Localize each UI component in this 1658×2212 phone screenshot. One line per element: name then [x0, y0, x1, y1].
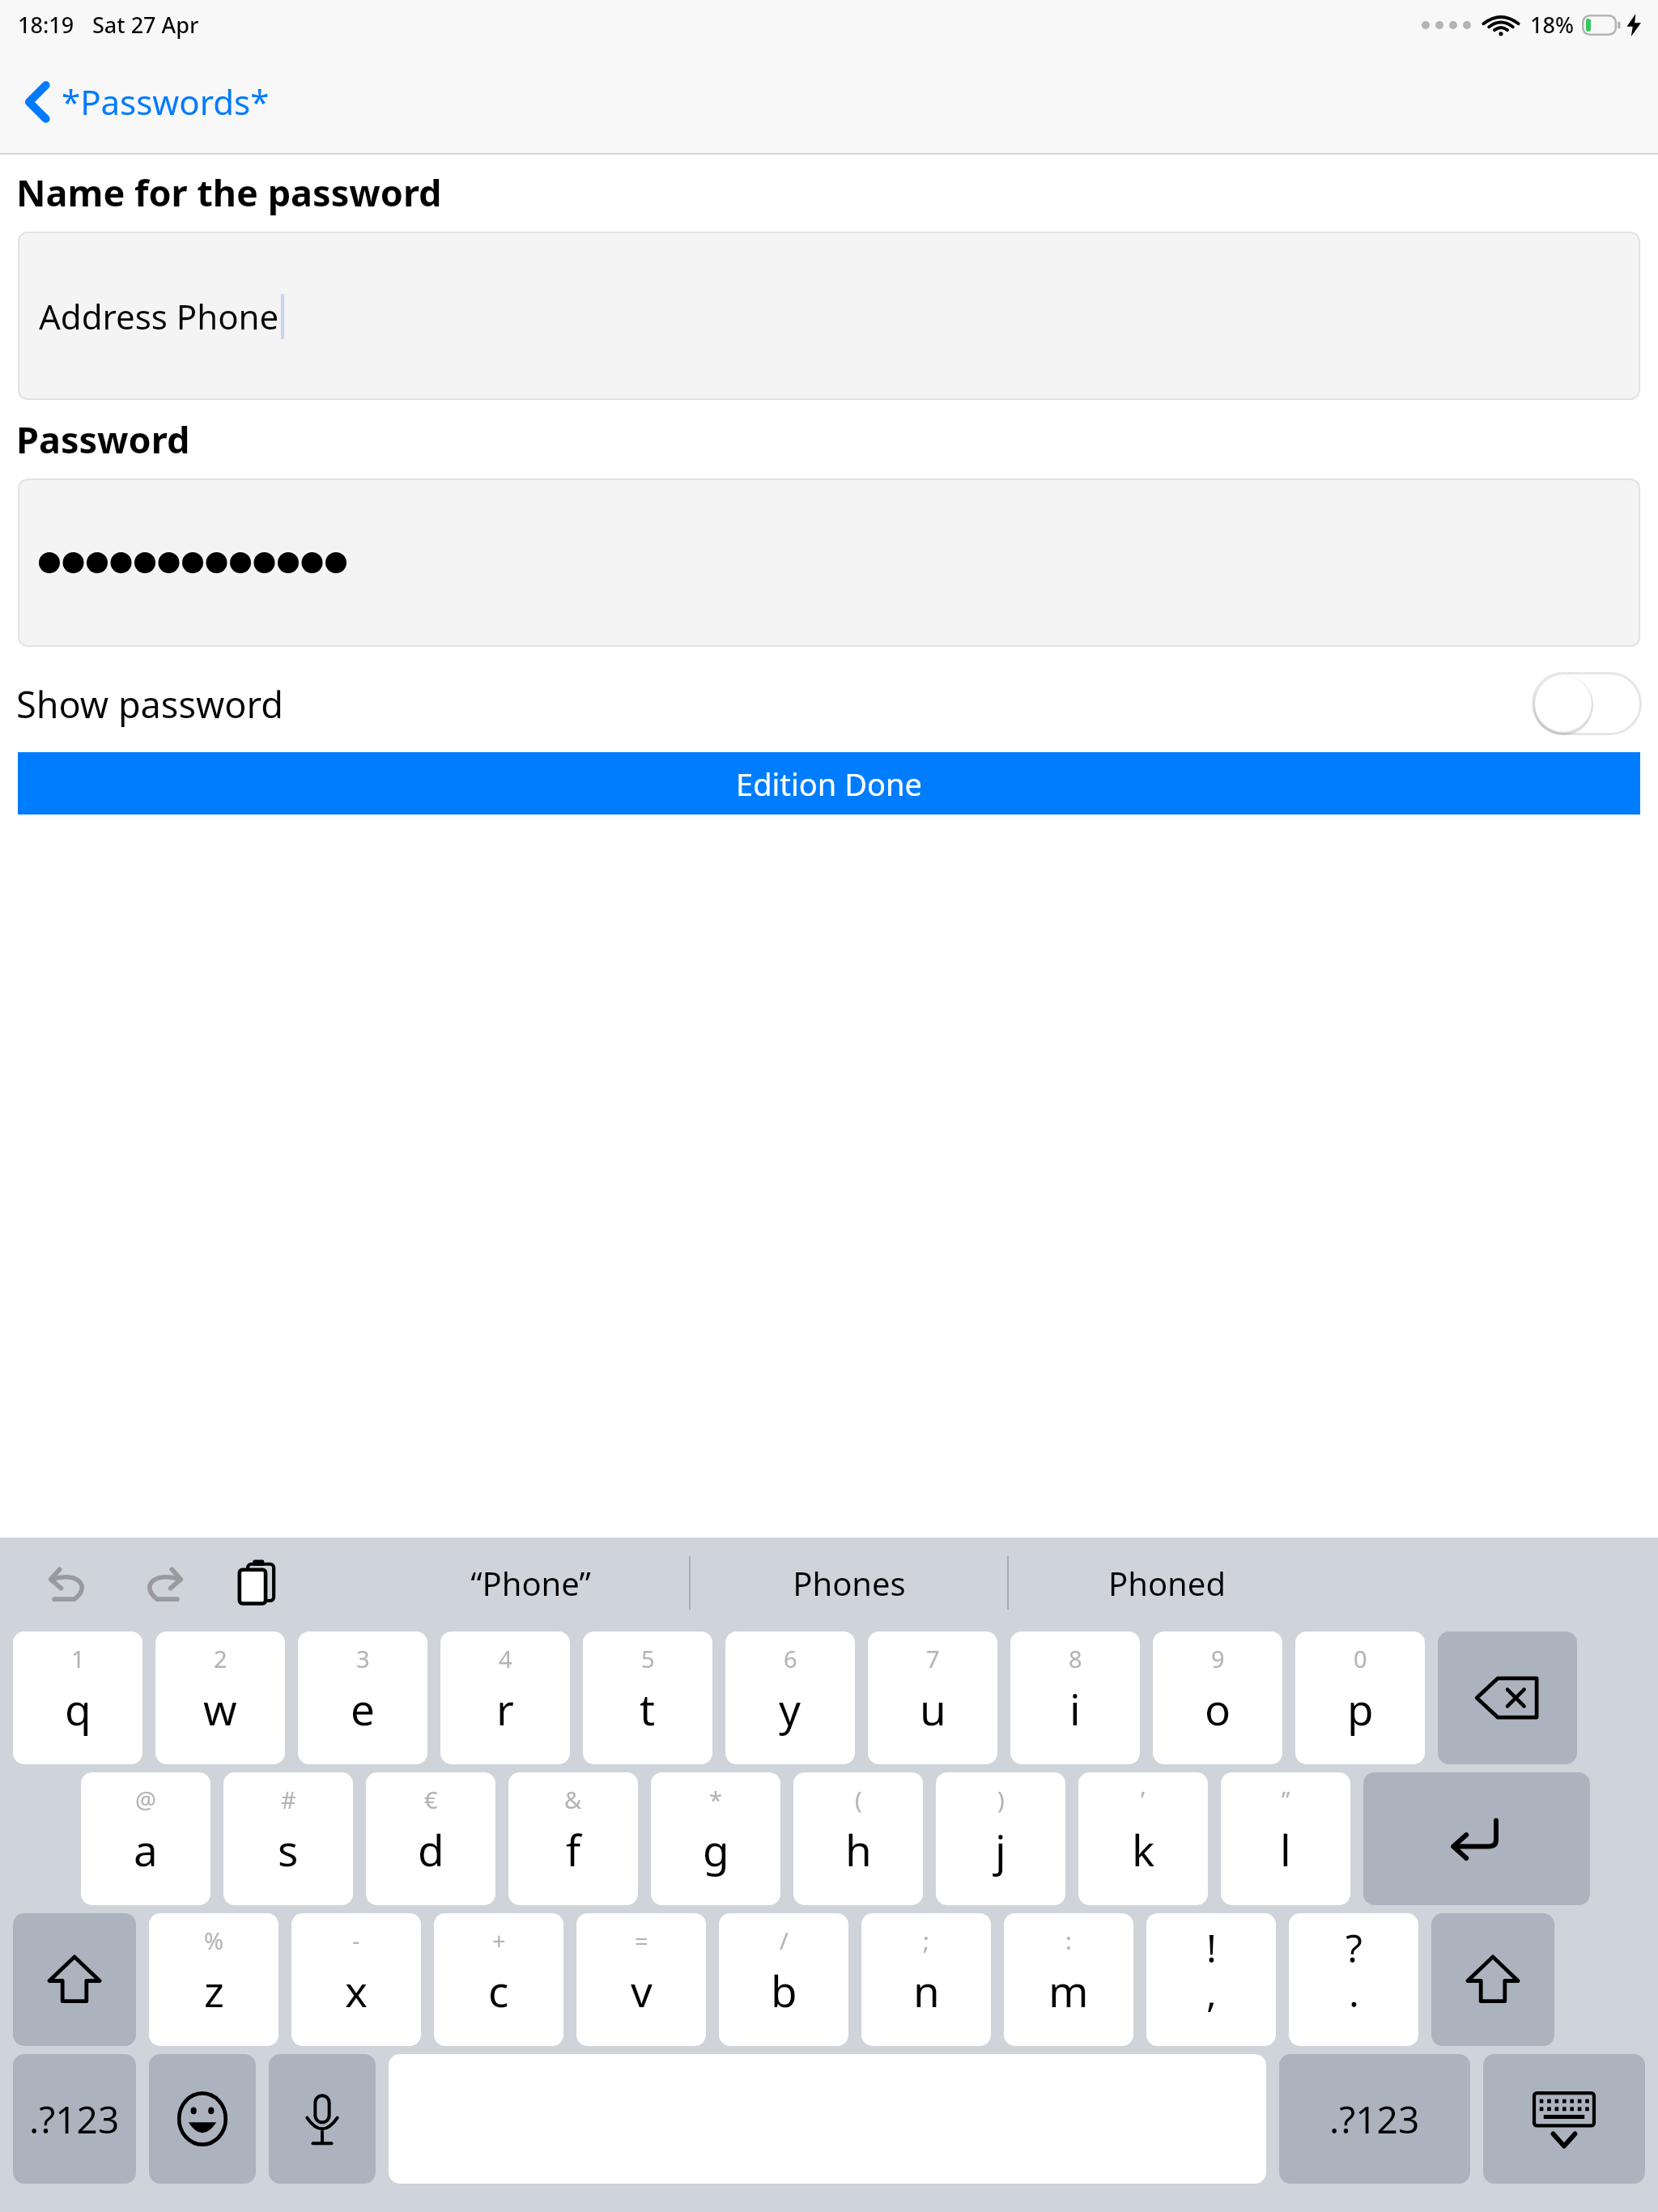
button[interactable]: Phoned [1009, 1538, 1325, 1628]
button[interactable]: 5 [583, 1631, 712, 1764]
staticText: n [913, 1961, 940, 2019]
staticText: v [631, 1961, 653, 2019]
staticText: Address Phone [39, 293, 279, 339]
staticText: u [920, 1679, 946, 1738]
button[interactable]: 7 [868, 1631, 997, 1764]
button[interactable]: ; [861, 1913, 991, 2046]
staticText: f [566, 1820, 581, 1878]
staticText: 3 [356, 1643, 370, 1674]
staticText: / [780, 1925, 789, 1956]
button[interactable]: 9 [1153, 1631, 1282, 1764]
staticText: w [203, 1679, 237, 1738]
button[interactable]: 3 [298, 1631, 427, 1764]
staticText: # [281, 1784, 296, 1815]
staticText: s [278, 1820, 299, 1878]
staticText: 18% [1530, 10, 1574, 40]
staticText: Phoned [1108, 1561, 1226, 1605]
button[interactable]: Backspace [1438, 1631, 1577, 1764]
staticText: d [418, 1820, 444, 1878]
button[interactable]: Shift [1431, 1913, 1554, 2046]
staticText: : [1065, 1925, 1072, 1956]
button[interactable]: ( [793, 1772, 923, 1905]
button[interactable]: .?123 [13, 2054, 136, 2184]
staticText: ( [855, 1784, 862, 1815]
staticText: @ [135, 1784, 157, 1815]
button[interactable]: Shift [13, 1913, 136, 2046]
button[interactable]: Hide keyboard [1483, 2054, 1645, 2184]
staticText: i [1069, 1679, 1081, 1738]
button[interactable]: Edition Done [18, 752, 1640, 815]
staticText: 2 [214, 1643, 227, 1674]
staticText: 8 [1069, 1643, 1082, 1674]
button[interactable]: 2 [155, 1631, 285, 1764]
staticText: .?123 [29, 2094, 120, 2145]
button[interactable]: 4 [440, 1631, 570, 1764]
staticText: + [492, 1925, 506, 1956]
staticText: x [345, 1961, 368, 2019]
staticText: ? [1346, 1921, 1363, 1974]
button[interactable]: ? [1289, 1913, 1418, 2046]
button[interactable]: € [366, 1772, 495, 1905]
button[interactable]: - [291, 1913, 421, 2046]
staticText: k [1132, 1820, 1155, 1878]
button[interactable]: Address Phone [18, 232, 1640, 400]
button[interactable]: Emoji [149, 2054, 256, 2184]
staticText: ) [997, 1784, 1005, 1815]
staticText: Sat 27 Apr [92, 10, 199, 40]
button[interactable]: 0 [1295, 1631, 1425, 1764]
staticText: Show password [16, 679, 283, 729]
staticText: j [995, 1820, 1006, 1878]
button[interactable]: 8 [1010, 1631, 1140, 1764]
button[interactable]: *Passwords* [21, 70, 274, 133]
button[interactable]: : [1004, 1913, 1133, 2046]
button[interactable]: Show password toggle [1532, 672, 1642, 735]
staticText: g [703, 1820, 729, 1878]
staticText: * [709, 1784, 722, 1815]
button[interactable]: = [576, 1913, 706, 2046]
button[interactable]: + [434, 1913, 563, 2046]
button[interactable]: Return [1363, 1772, 1590, 1905]
staticText: Phones [793, 1561, 906, 1605]
button[interactable]: Show password [0, 660, 1658, 747]
button[interactable]: * [651, 1772, 780, 1905]
button[interactable]: Phones [691, 1538, 1007, 1628]
button[interactable]: ’ [1078, 1772, 1208, 1905]
button[interactable]: ) [936, 1772, 1065, 1905]
staticText: = [635, 1925, 648, 1956]
staticText: c [488, 1961, 509, 2019]
staticText: Name for the password [16, 168, 442, 217]
button[interactable]: % [149, 1913, 278, 2046]
staticText: 0 [1354, 1643, 1367, 1674]
button[interactable]: & [508, 1772, 638, 1905]
button[interactable] [18, 479, 1640, 647]
staticText: ; [923, 1925, 929, 1956]
button[interactable]: Redo [133, 1553, 193, 1613]
staticText: 9 [1211, 1643, 1225, 1674]
button[interactable]: @ [81, 1772, 210, 1905]
button[interactable]: 6 [725, 1631, 855, 1764]
button[interactable]: 1 [13, 1631, 142, 1764]
staticText: € [424, 1784, 438, 1815]
staticText: 6 [784, 1643, 797, 1674]
button[interactable]: / [719, 1913, 848, 2046]
staticText: .?123 [1329, 2094, 1420, 2145]
button[interactable]: “Phone” [372, 1538, 689, 1628]
staticText: h [845, 1820, 872, 1878]
button[interactable]: Dictation [269, 2054, 376, 2184]
staticText: , [1206, 1966, 1217, 2018]
staticText: t [640, 1679, 656, 1738]
button[interactable]: # [223, 1772, 353, 1905]
staticText: 4 [499, 1643, 512, 1674]
button[interactable]: ” [1221, 1772, 1350, 1905]
button[interactable]: ! [1146, 1913, 1276, 2046]
staticText: ” [1282, 1784, 1290, 1815]
staticText: Edition Done [736, 763, 922, 805]
staticText: m [1048, 1961, 1089, 2019]
button[interactable]: Paste [227, 1553, 287, 1613]
staticText: r [496, 1679, 514, 1738]
button[interactable]: .?123 [1279, 2054, 1470, 2184]
staticText: 5 [641, 1643, 655, 1674]
button[interactable]: Space [389, 2054, 1266, 2184]
staticText: % [204, 1925, 224, 1956]
button[interactable]: Undo [39, 1553, 99, 1613]
